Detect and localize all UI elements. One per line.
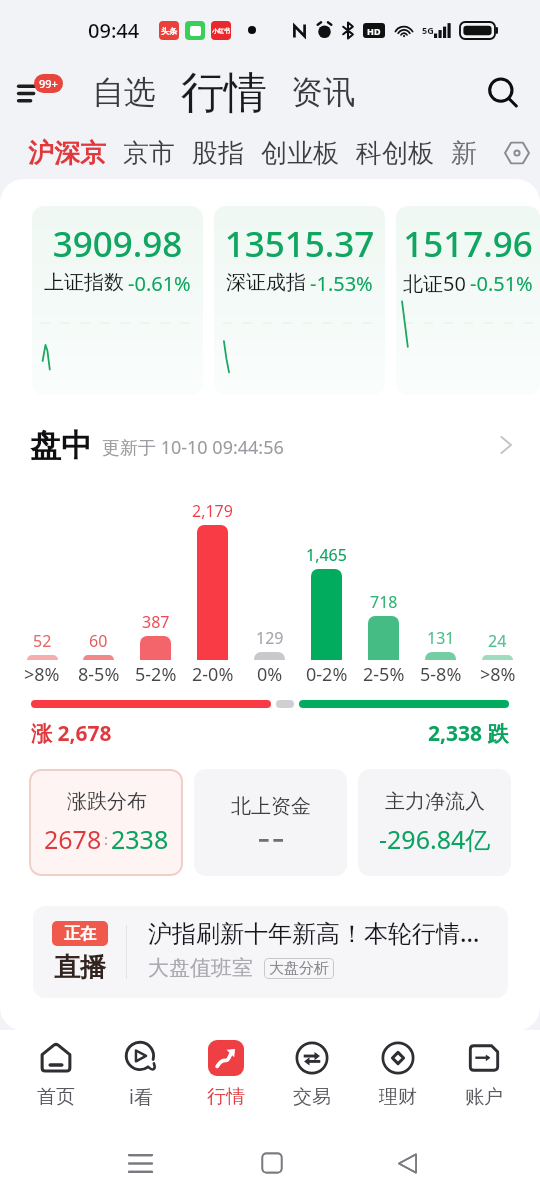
staticText: 北证50 bbox=[403, 270, 466, 297]
staticText: >8% bbox=[24, 662, 60, 687]
staticText: 首页 bbox=[37, 1085, 75, 1109]
staticText: 深证成指 bbox=[226, 270, 306, 295]
other: Home bbox=[261, 1152, 283, 1174]
staticText: 北上资金 bbox=[231, 794, 311, 819]
staticText: 行情 bbox=[207, 1085, 245, 1109]
button[interactable]: 13515.37 bbox=[214, 206, 385, 395]
button[interactable]: 行情 bbox=[181, 66, 267, 120]
staticText: 主力净流入 bbox=[385, 789, 485, 814]
staticText: 创业板 bbox=[261, 137, 339, 170]
button[interactable]: Search bbox=[480, 70, 526, 116]
other: Recents bbox=[129, 1153, 152, 1174]
staticText: 沪深京 bbox=[28, 137, 106, 170]
button[interactable]: 资讯 bbox=[291, 72, 355, 114]
staticText: 股指 bbox=[192, 137, 244, 170]
other: Settings bbox=[504, 140, 530, 166]
button[interactable]: 科创板 bbox=[356, 137, 434, 170]
other: Search bbox=[485, 75, 521, 111]
staticText: 387 bbox=[142, 611, 170, 633]
staticText: 60 bbox=[89, 630, 108, 652]
staticText: 99+ bbox=[39, 76, 58, 91]
staticText: 2-0% bbox=[192, 662, 234, 687]
staticText: 2338 bbox=[111, 822, 169, 856]
button[interactable]: 主力净流入 bbox=[358, 769, 511, 876]
staticText: 24 bbox=[488, 630, 507, 652]
staticText: 0% bbox=[257, 662, 283, 687]
staticText: 涨 2,678 bbox=[31, 719, 112, 748]
button[interactable]: 3909.98 bbox=[32, 206, 203, 395]
button[interactable]: 涨跌分布 bbox=[29, 769, 183, 876]
staticText: 大盘分析 bbox=[269, 959, 329, 978]
staticText: 正在 bbox=[64, 924, 96, 944]
staticText: 2678 bbox=[44, 822, 102, 856]
staticText: 理财 bbox=[379, 1085, 417, 1109]
staticText: 2,338 跌 bbox=[428, 719, 509, 748]
staticText: 直播 bbox=[54, 951, 106, 984]
other: Back bbox=[398, 1153, 417, 1174]
staticText: 盘中 bbox=[30, 426, 92, 465]
button[interactable]: 理财 bbox=[355, 1030, 441, 1118]
staticText: 2,179 bbox=[192, 500, 233, 522]
staticText: 涨跌分布 bbox=[67, 789, 147, 814]
staticText: 5-2% bbox=[135, 662, 177, 687]
other: Home bbox=[261, 1152, 283, 1174]
staticText: 09:44 bbox=[88, 17, 140, 44]
staticText: 沪指刷新十年新高！本轮行情… bbox=[148, 916, 480, 949]
button[interactable]: 自选 bbox=[92, 72, 156, 114]
staticText: HD bbox=[367, 25, 381, 37]
button[interactable]: i看 bbox=[98, 1030, 183, 1118]
staticText: 0-2% bbox=[306, 662, 348, 687]
staticText: 5G bbox=[422, 24, 434, 36]
button[interactable]: Settings bbox=[500, 136, 534, 170]
staticText: 自选 bbox=[92, 72, 156, 112]
staticText: 5-8% bbox=[420, 662, 462, 687]
staticText: 科创板 bbox=[356, 137, 434, 170]
staticText: 新 bbox=[451, 137, 477, 170]
other: Menu bbox=[18, 80, 48, 106]
staticText: -0.51% bbox=[470, 270, 533, 297]
button[interactable]: 新 bbox=[451, 137, 477, 170]
staticText: 上证指数 bbox=[44, 270, 124, 295]
button[interactable]: 首页 bbox=[13, 1030, 98, 1118]
button[interactable]: 交易 bbox=[269, 1030, 355, 1118]
staticText: 资讯 bbox=[291, 72, 355, 112]
button[interactable]: 京市 bbox=[123, 137, 175, 170]
staticText: 京市 bbox=[123, 137, 175, 170]
staticText: 更新于 10-10 09:44:56 bbox=[102, 435, 284, 460]
staticText: 大盘值班室 bbox=[148, 955, 253, 981]
staticText: : bbox=[104, 829, 109, 849]
button[interactable]: 1517.96 bbox=[396, 206, 540, 395]
staticText: 1,465 bbox=[306, 544, 347, 566]
staticText: -1.53% bbox=[310, 270, 373, 297]
other: Recents bbox=[129, 1153, 152, 1174]
staticText: i看 bbox=[129, 1084, 153, 1110]
staticText: 718 bbox=[370, 591, 398, 613]
button[interactable]: 创业板 bbox=[261, 137, 339, 170]
staticText: >8% bbox=[480, 662, 516, 687]
staticText: 交易 bbox=[293, 1085, 331, 1109]
button[interactable]: 正在 bbox=[33, 906, 508, 998]
staticText: 小红书 bbox=[212, 27, 230, 35]
staticText: 头条 bbox=[161, 26, 177, 36]
staticText: 52 bbox=[33, 630, 52, 652]
staticText: 1517.96 bbox=[396, 220, 540, 268]
staticText: -296.84亿 bbox=[379, 822, 491, 856]
staticText: 131 bbox=[427, 627, 455, 649]
button[interactable]: 盘中 bbox=[30, 422, 512, 468]
button[interactable]: 行情 bbox=[183, 1030, 269, 1118]
button[interactable]: 沪深京 bbox=[28, 137, 106, 170]
staticText: 129 bbox=[256, 627, 284, 649]
staticText: -0.61% bbox=[128, 270, 191, 297]
staticText: 账户 bbox=[465, 1085, 503, 1109]
staticText: 8-5% bbox=[78, 662, 120, 687]
staticText: 行情 bbox=[181, 66, 267, 120]
button[interactable]: 股指 bbox=[192, 137, 244, 170]
other: Back bbox=[398, 1153, 417, 1174]
staticText: 3909.98 bbox=[32, 220, 203, 268]
button[interactable]: Menu bbox=[18, 70, 64, 116]
staticText: 2-5% bbox=[363, 662, 405, 687]
button[interactable]: 账户 bbox=[441, 1030, 527, 1118]
button[interactable]: 北上资金 bbox=[194, 769, 347, 876]
staticText: 13515.37 bbox=[214, 220, 385, 268]
